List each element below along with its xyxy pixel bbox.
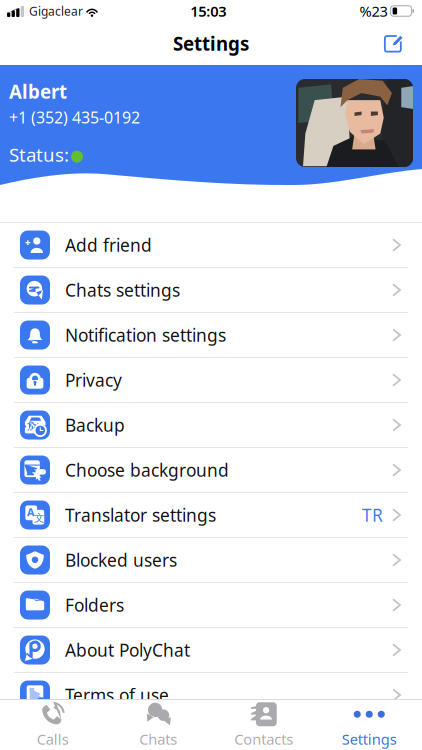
staticText: Gigaclear	[29, 3, 83, 19]
staticText: Terms of use	[65, 683, 169, 706]
staticText: Add friend	[65, 233, 152, 256]
button[interactable]: Add friend	[0, 223, 422, 268]
button[interactable]: Notification settings	[0, 313, 422, 358]
button[interactable]: Privacy	[0, 358, 422, 403]
button[interactable]: Backup	[0, 403, 422, 448]
staticText: Settings	[342, 729, 397, 749]
button[interactable]: About PolyChat	[0, 628, 422, 673]
button[interactable]: Choose background	[0, 448, 422, 493]
staticText: Chats	[139, 729, 177, 749]
staticText: Folders	[65, 593, 124, 616]
staticText: Contacts	[234, 729, 293, 749]
button[interactable]: Chats settings	[0, 268, 422, 313]
staticText: Translator settings	[65, 503, 216, 526]
button[interactable]: Blocked users	[0, 538, 422, 583]
staticText: Chats settings	[65, 278, 180, 301]
button[interactable]: Calls	[0, 695, 105, 750]
staticText: Choose background	[65, 458, 229, 481]
staticText: About PolyChat	[65, 638, 190, 661]
staticText: 文	[34, 511, 45, 524]
button[interactable]: Terms of use	[0, 673, 422, 718]
staticText: Calls	[37, 729, 69, 749]
staticText: TR	[362, 503, 383, 526]
button[interactable]: Chats	[105, 695, 211, 750]
staticText: Status:	[9, 142, 69, 167]
button[interactable]: Compose	[376, 28, 410, 58]
staticText: A	[27, 505, 34, 519]
button[interactable]: Settings	[316, 695, 422, 750]
staticText: Notification settings	[65, 323, 226, 346]
staticText: Albert	[9, 79, 67, 104]
button[interactable]: Folders	[0, 583, 422, 628]
staticText: Privacy	[65, 368, 122, 391]
staticText: Settings	[173, 31, 249, 56]
staticText: Backup	[65, 413, 125, 436]
staticText: %23	[360, 1, 388, 21]
staticText: 15:03	[190, 1, 226, 21]
button[interactable]: A	[0, 493, 422, 538]
staticText: +1 (352) 435-0192	[9, 107, 140, 128]
staticText: Blocked users	[65, 548, 177, 571]
button[interactable]: Contacts	[211, 695, 316, 750]
